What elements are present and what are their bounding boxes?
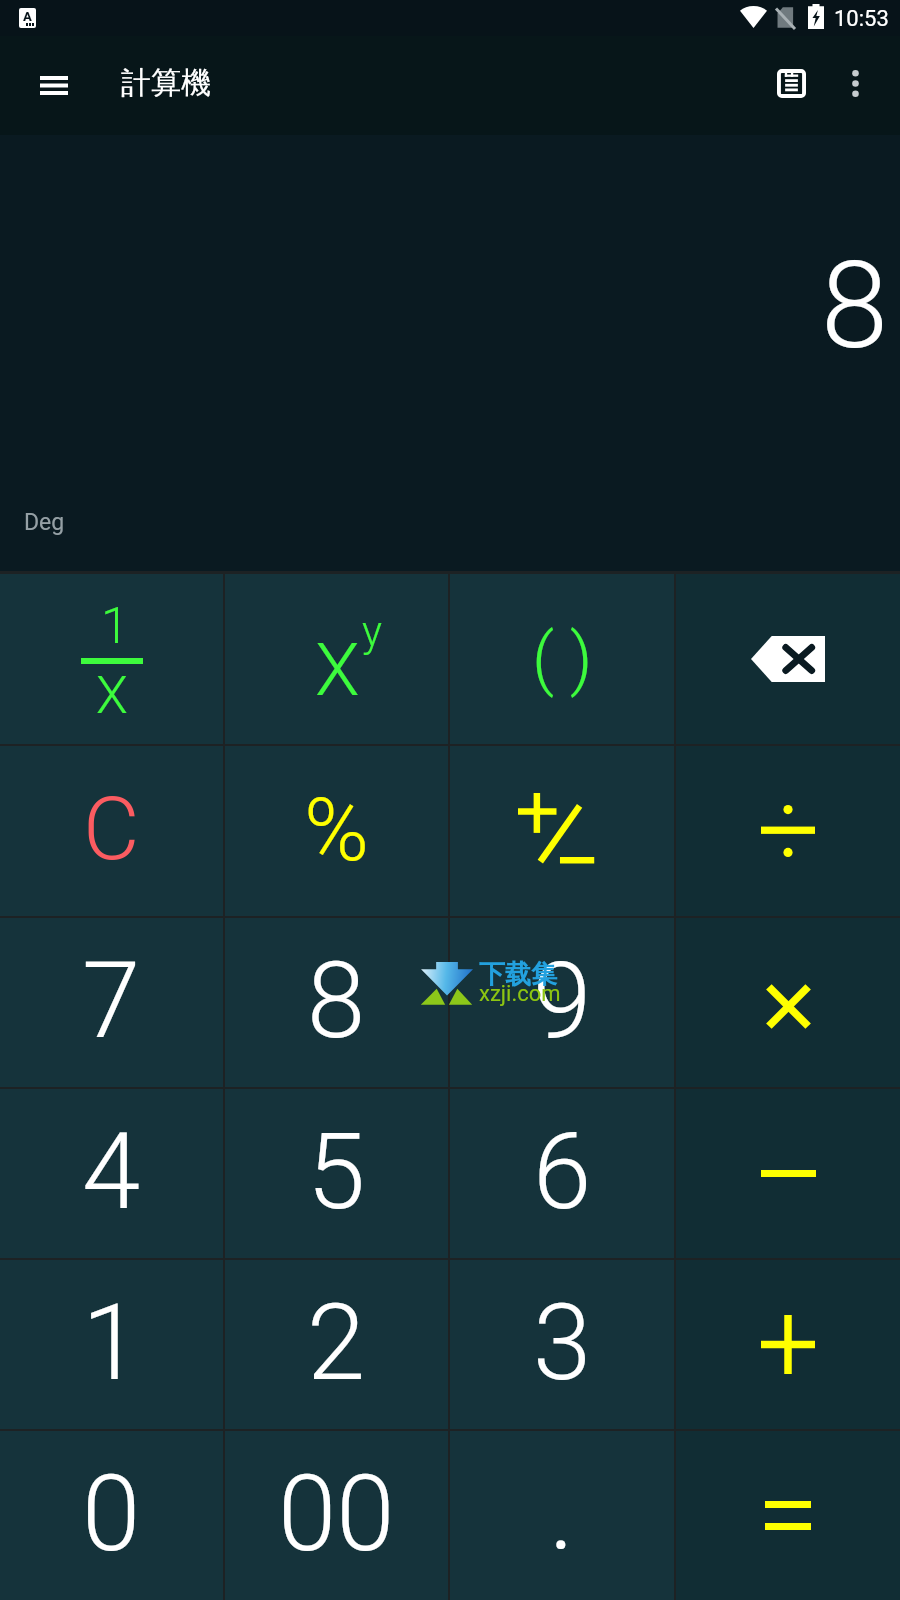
staticText: C bbox=[83, 778, 140, 880]
button[interactable]: C bbox=[0, 746, 223, 916]
button[interactable]: 9 bbox=[450, 918, 674, 1087]
staticText: xzji.com bbox=[479, 981, 561, 1007]
staticText: 7 bbox=[82, 940, 141, 1063]
other: Divide bbox=[761, 805, 815, 857]
button[interactable]: 1 bbox=[0, 1260, 223, 1429]
staticText: 10:53 bbox=[834, 6, 889, 32]
button[interactable]: One over x bbox=[0, 574, 223, 744]
button[interactable]: x to the power y bbox=[225, 574, 448, 744]
staticText: 8 bbox=[821, 235, 889, 377]
button[interactable]: Parentheses bbox=[450, 574, 674, 744]
button[interactable]: 5 bbox=[225, 1089, 448, 1258]
other: One over x bbox=[72, 601, 152, 717]
button[interactable]: 8 bbox=[225, 918, 448, 1087]
button[interactable]: Backspace bbox=[676, 574, 900, 744]
button[interactable]: 6 bbox=[450, 1089, 674, 1258]
button[interactable]: . bbox=[450, 1431, 674, 1600]
other: Plus minus bbox=[518, 793, 595, 863]
staticText: y bbox=[362, 607, 382, 656]
staticText: A bbox=[23, 9, 32, 24]
button[interactable]: Plus minus bbox=[450, 746, 674, 916]
button[interactable]: 7 bbox=[0, 918, 223, 1087]
button[interactable]: More options bbox=[825, 53, 885, 113]
button[interactable]: 4 bbox=[0, 1089, 223, 1258]
staticText: ) bbox=[570, 618, 593, 699]
staticText: 9 bbox=[533, 940, 592, 1063]
staticText: 00 bbox=[278, 1453, 395, 1576]
other: Equals bbox=[765, 1501, 811, 1530]
other: Multiply bbox=[765, 983, 812, 1030]
staticText: 4 bbox=[82, 1111, 141, 1234]
staticText: . bbox=[549, 1452, 575, 1575]
staticText: X bbox=[96, 665, 128, 726]
staticText: 1 bbox=[82, 1282, 141, 1405]
button[interactable]: Plus bbox=[676, 1260, 900, 1429]
button[interactable]: 2 bbox=[225, 1260, 448, 1429]
button[interactable]: Equals bbox=[676, 1431, 900, 1600]
button[interactable]: Multiply bbox=[676, 918, 900, 1087]
staticText: 計算機 bbox=[121, 64, 211, 102]
staticText: 8 bbox=[307, 940, 366, 1063]
button[interactable]: Minus bbox=[676, 1089, 900, 1258]
staticText: 6 bbox=[533, 1111, 592, 1234]
button[interactable]: Menu bbox=[26, 57, 82, 113]
staticText: X bbox=[315, 627, 360, 713]
button[interactable]: 3 bbox=[450, 1260, 674, 1429]
staticText: % bbox=[304, 778, 370, 881]
staticText: 0 bbox=[82, 1453, 141, 1576]
other: x to the power y bbox=[315, 605, 380, 691]
staticText: 2 bbox=[307, 1282, 366, 1405]
other: Backspace bbox=[751, 636, 825, 682]
staticText: 下载集 bbox=[479, 958, 557, 991]
staticText: Deg bbox=[24, 509, 65, 536]
button[interactable]: % bbox=[225, 746, 448, 916]
other: Plus bbox=[761, 1315, 815, 1374]
staticText: 1 bbox=[101, 597, 129, 656]
button[interactable]: 0 bbox=[0, 1431, 223, 1600]
staticText: ( bbox=[532, 618, 555, 699]
button[interactable]: 00 bbox=[225, 1431, 448, 1600]
button[interactable]: Divide bbox=[676, 746, 900, 916]
other: Parentheses bbox=[532, 618, 593, 699]
button[interactable]: History bbox=[757, 49, 825, 117]
staticText: 3 bbox=[533, 1282, 592, 1405]
staticText: 5 bbox=[307, 1111, 366, 1234]
